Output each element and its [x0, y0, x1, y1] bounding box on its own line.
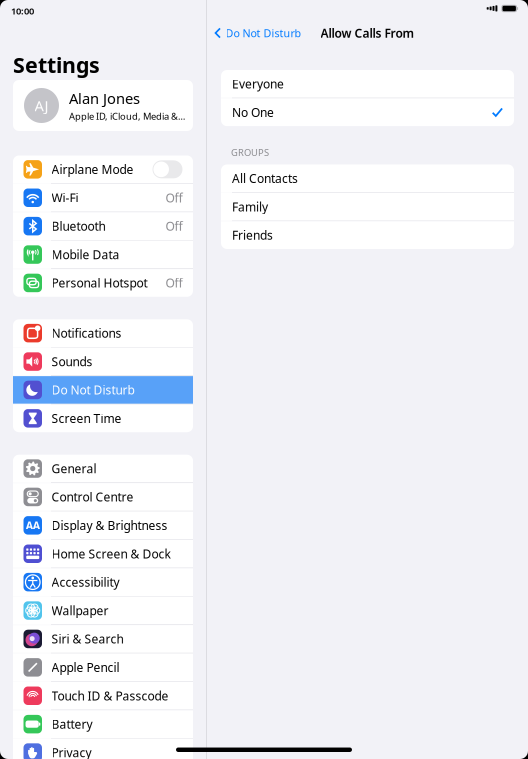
staticText: Off [165, 275, 182, 291]
staticText: Friends [232, 227, 273, 243]
staticText: Apple ID, iCloud, Media &… [69, 110, 185, 122]
staticText: Home Screen & Dock [51, 546, 170, 562]
button[interactable]: Touch ID & Passcode [13, 682, 193, 710]
staticText: Off [165, 190, 182, 206]
button[interactable]: Do Not Disturb [13, 376, 193, 404]
staticText: Privacy [51, 745, 91, 759]
button[interactable]: Personal Hotspot [13, 269, 193, 297]
button[interactable]: Mobile Data [13, 241, 193, 268]
button[interactable]: Home Screen & Dock [13, 540, 193, 568]
button[interactable]: AA [13, 511, 193, 539]
button[interactable]: Everyone [221, 70, 514, 98]
staticText: Allow Calls From [320, 25, 414, 41]
button[interactable]: Wallpaper [13, 597, 193, 624]
button[interactable]: Bluetooth [13, 212, 193, 240]
button[interactable]: Privacy [13, 739, 193, 759]
staticText: Everyone [232, 76, 284, 92]
staticText: Bluetooth [51, 218, 105, 234]
button[interactable]: Airplane Mode [13, 155, 193, 183]
staticText: AA [26, 518, 40, 532]
button[interactable]: Battery [13, 710, 193, 738]
staticText: All Contacts [232, 170, 298, 186]
button[interactable]: General [13, 455, 193, 482]
staticText: 10:00 [11, 5, 34, 17]
staticText: Wallpaper [51, 603, 108, 618]
button[interactable]: Family [221, 193, 514, 221]
button[interactable]: Sounds [13, 348, 193, 375]
staticText: Family [232, 199, 268, 215]
button[interactable]: All Contacts [221, 164, 514, 192]
button[interactable]: Accessibility [13, 568, 193, 596]
staticText: Alan Jones [69, 89, 140, 108]
staticText: Off [165, 218, 182, 234]
staticText: Control Centre [51, 489, 133, 505]
staticText: Notifications [51, 325, 121, 341]
staticText: No One [232, 104, 274, 120]
button[interactable]: No One [221, 98, 514, 126]
button[interactable]: AJ [13, 80, 193, 131]
button[interactable]: Wi-Fi [13, 184, 193, 212]
staticText: Display & Brightness [51, 517, 167, 533]
button[interactable]: Siri & Search [13, 625, 193, 653]
staticText: Touch ID & Passcode [51, 688, 168, 704]
staticText: Wi-Fi [51, 190, 78, 206]
staticText: Sounds [51, 354, 92, 369]
button[interactable]: Friends [221, 221, 514, 249]
staticText: Do Not Disturb [51, 382, 134, 398]
staticText: Mobile Data [51, 247, 119, 262]
button[interactable]: Screen Time [13, 404, 193, 432]
button[interactable]: Control Centre [13, 483, 193, 511]
staticText: Battery [51, 716, 92, 732]
staticText: Apple Pencil [51, 659, 119, 675]
staticText: Airplane Mode [51, 161, 133, 177]
staticText: General [51, 461, 96, 476]
staticText: Settings [13, 51, 100, 79]
staticText: Do Not Disturb [225, 26, 301, 40]
staticText: Screen Time [51, 410, 121, 426]
staticText: GROUPS [231, 146, 269, 158]
button[interactable]: Apple Pencil [13, 653, 193, 681]
button[interactable]: Do Not Disturb [214, 22, 301, 44]
staticText: Siri & Search [51, 631, 123, 647]
staticText: AJ [34, 96, 48, 115]
staticText: Personal Hotspot [51, 275, 147, 291]
button[interactable]: Notifications [13, 319, 193, 347]
staticText: Accessibility [51, 574, 119, 590]
